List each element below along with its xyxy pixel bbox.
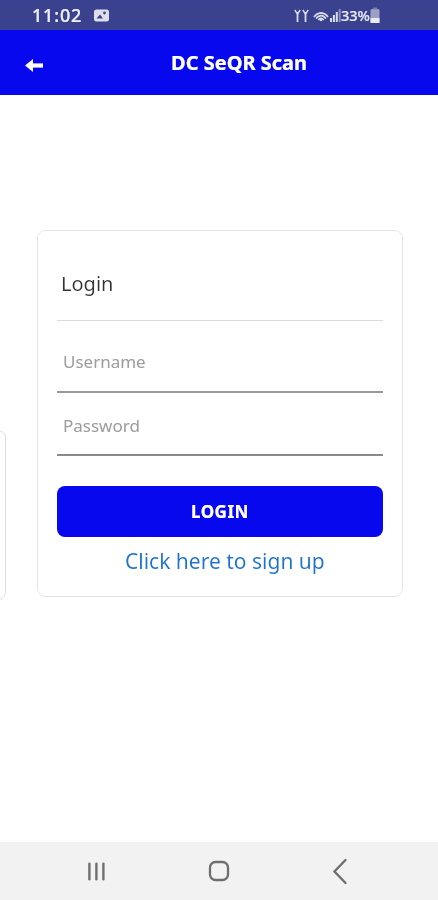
staticText: Login xyxy=(61,270,114,297)
button[interactable] xyxy=(191,843,247,899)
staticText: 33% xyxy=(341,5,370,25)
button[interactable] xyxy=(12,43,56,87)
staticText: 11:02 xyxy=(32,3,83,28)
staticText: Username xyxy=(63,350,146,373)
button[interactable] xyxy=(314,843,370,899)
staticText: LOGIN xyxy=(191,500,249,523)
button[interactable]: LOGIN xyxy=(57,486,383,537)
button[interactable]: Click here to sign up xyxy=(57,547,383,576)
staticText: Click here to sign up xyxy=(125,547,325,576)
button[interactable] xyxy=(68,843,124,899)
staticText: DC SeQR Scan xyxy=(171,49,308,76)
staticText: Password xyxy=(63,414,140,437)
